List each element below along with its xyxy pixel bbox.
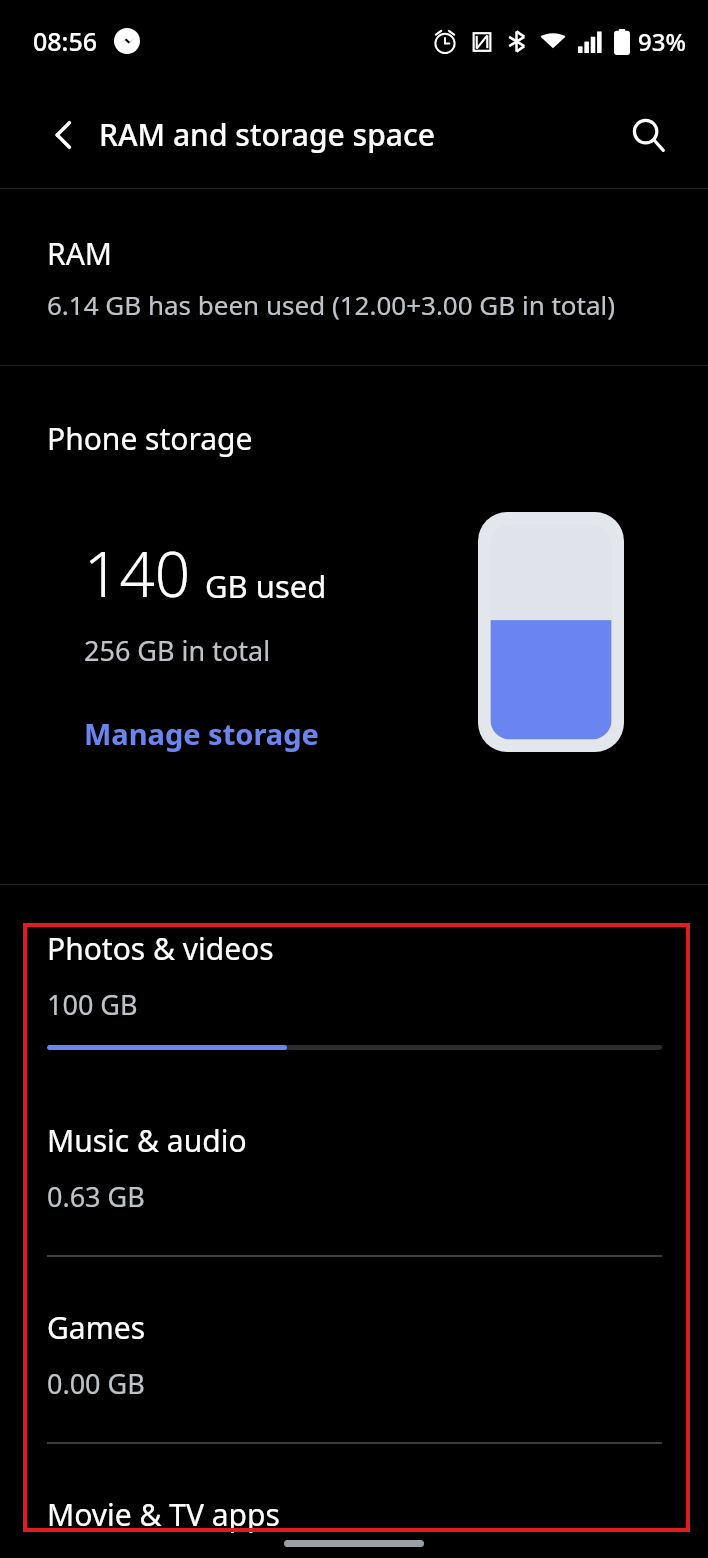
button[interactable]: Photos & videos xyxy=(0,885,708,1074)
button[interactable]: Games xyxy=(0,1261,708,1448)
staticText: Games xyxy=(47,1307,146,1348)
staticText: 6.14 GB has been used (12.00+3.00 GB in … xyxy=(47,287,616,322)
button[interactable]: Movie & TV apps xyxy=(0,1448,708,1558)
staticText: Manage storage xyxy=(84,714,319,753)
staticText: GB used xyxy=(205,565,327,607)
staticText: 256 GB in total xyxy=(84,632,271,669)
staticText: RAM and storage space xyxy=(99,114,435,155)
staticText: Movie & TV apps xyxy=(47,1494,280,1535)
button[interactable]: Search xyxy=(612,99,684,171)
staticText: 0.63 GB xyxy=(47,1178,145,1215)
staticText: RAM xyxy=(47,233,113,274)
staticText: 08:56 xyxy=(33,24,98,58)
staticText: 93% xyxy=(638,25,686,58)
staticText: 140 xyxy=(84,531,191,615)
staticText: Phone storage xyxy=(47,418,253,459)
button[interactable]: Music & audio xyxy=(0,1074,708,1261)
staticText: 0.00 GB xyxy=(47,1365,145,1402)
button[interactable]: Manage storage xyxy=(84,714,319,753)
button[interactable]: Back xyxy=(28,99,100,171)
button[interactable]: RAM xyxy=(0,189,708,365)
staticText: Music & audio xyxy=(47,1120,247,1161)
staticText: Photos & videos xyxy=(47,928,274,969)
staticText: 100 GB xyxy=(47,986,138,1023)
